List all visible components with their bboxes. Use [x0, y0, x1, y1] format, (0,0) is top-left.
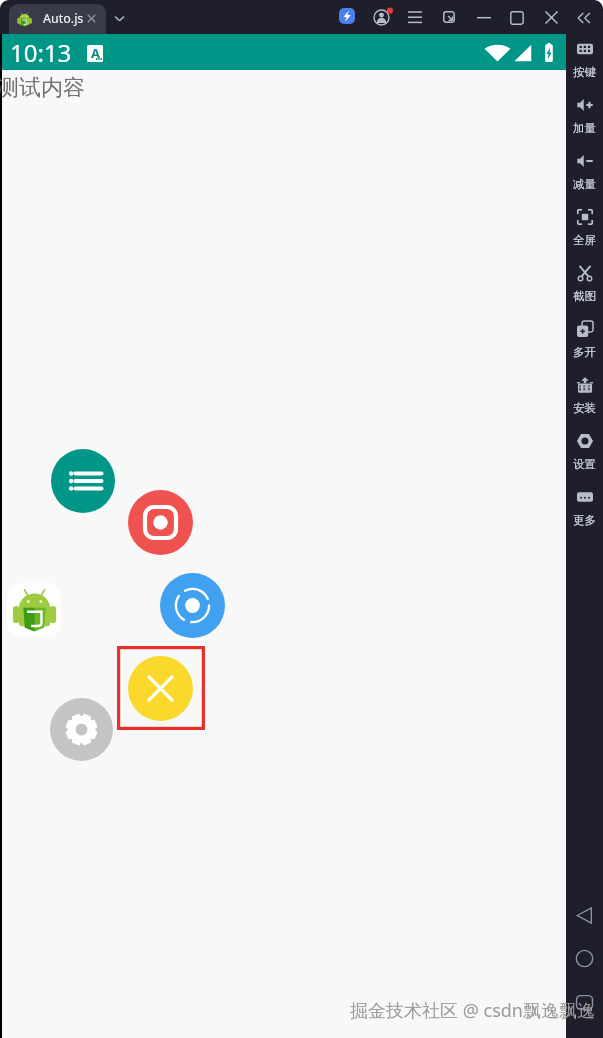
button[interactable]: 全屏: [566, 209, 603, 247]
staticText: 安装: [573, 401, 596, 415]
staticText: 截图: [573, 289, 596, 303]
button[interactable]: Settings: [50, 698, 113, 761]
button[interactable]: Floating window: [443, 11, 455, 23]
button[interactable]: Back: [575, 906, 594, 925]
button[interactable]: Home: [575, 949, 594, 968]
staticText: Auto.js: [43, 10, 84, 27]
staticText: 按键: [573, 65, 596, 79]
button[interactable]: 多开: [566, 321, 603, 359]
button[interactable]: Open tab list: [114, 14, 125, 25]
button[interactable]: Maximize: [510, 11, 524, 25]
button[interactable]: Recent apps: [575, 993, 594, 1012]
button[interactable]: Inspect layout: [160, 573, 225, 638]
button[interactable]: 设置: [566, 433, 603, 471]
staticText: 全屏: [573, 233, 596, 247]
button[interactable]: 截图: [566, 265, 603, 303]
staticText: 减量: [573, 177, 596, 191]
button[interactable]: Auto.js: [7, 583, 61, 637]
staticText: 测试内容: [0, 74, 85, 102]
staticText: A: [91, 45, 100, 61]
button[interactable]: 减量: [566, 153, 603, 191]
staticText: 10:13: [10, 36, 72, 69]
button[interactable]: Collapse toolbar: [577, 11, 591, 25]
button[interactable]: Close tab: [87, 14, 96, 23]
staticText: 多开: [573, 345, 596, 359]
staticText: 设置: [573, 457, 596, 471]
button[interactable]: Auto.js: [9, 4, 106, 34]
button[interactable]: Minimize: [477, 17, 491, 31]
button[interactable]: 按键: [566, 41, 603, 79]
button[interactable]: 加量: [566, 97, 603, 135]
button[interactable]: Account: [373, 9, 390, 26]
button[interactable]: Close floating menu: [128, 656, 193, 721]
staticText: 更多: [573, 513, 596, 527]
staticText: 掘金技术社区 @ csdn飘逸飘逸: [350, 998, 595, 1023]
button[interactable]: 更多: [566, 489, 603, 527]
button[interactable]: Accelerate: [339, 8, 355, 24]
button[interactable]: Record: [128, 490, 193, 555]
button[interactable]: Close: [545, 11, 558, 24]
button[interactable]: Menu: [51, 449, 115, 513]
button[interactable]: Menu: [408, 11, 422, 25]
button[interactable]: 安装: [566, 377, 603, 415]
staticText: 加量: [573, 121, 596, 135]
